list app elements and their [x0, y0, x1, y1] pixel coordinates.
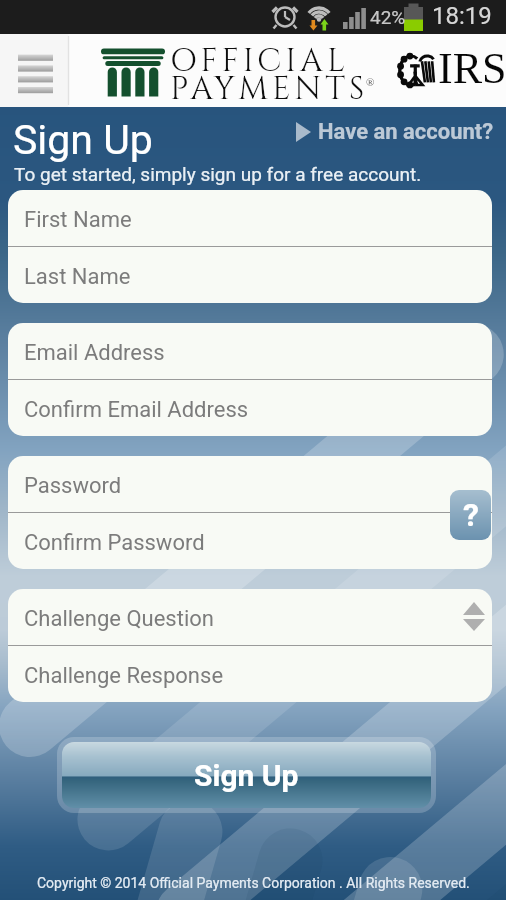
- button[interactable]: Menu: [0, 34, 70, 107]
- staticText: Challenge Response: [24, 663, 224, 689]
- button[interactable]: Help: [450, 490, 491, 540]
- staticText: Have an account?: [318, 119, 494, 145]
- staticText: Password: [24, 473, 122, 499]
- staticText: Email Address: [24, 340, 165, 366]
- staticText: Copyright © 2014 Official Payments Corpo…: [37, 875, 470, 891]
- staticText: Confirm Email Address: [24, 397, 249, 423]
- button[interactable]: Confirm Password: [8, 513, 492, 569]
- button[interactable]: Password: [8, 456, 492, 512]
- staticText: ®: [366, 76, 375, 88]
- staticText: 42%: [370, 6, 406, 28]
- button[interactable]: Last Name: [8, 247, 492, 303]
- staticText: OFFICIAL: [170, 40, 349, 83]
- staticText: Sign Up: [194, 758, 299, 793]
- staticText: Challenge Question: [24, 606, 214, 632]
- button[interactable]: Sign Up: [62, 742, 431, 808]
- staticText: To get started, simply sign up for a fre…: [14, 163, 422, 185]
- staticText: IRS: [438, 44, 506, 93]
- staticText: ?: [463, 496, 479, 534]
- staticText: Last Name: [24, 264, 131, 290]
- button[interactable]: Challenge Question: [8, 589, 492, 645]
- staticText: Confirm Password: [24, 530, 205, 556]
- staticText: 18:19: [432, 2, 492, 30]
- staticText: Sign Up: [13, 116, 153, 164]
- staticText: First Name: [24, 207, 132, 233]
- button[interactable]: Confirm Email Address: [8, 380, 492, 436]
- staticText: PAYMENTS: [170, 68, 369, 111]
- button[interactable]: First Name: [8, 190, 492, 246]
- button[interactable]: Challenge Response: [8, 646, 492, 702]
- button[interactable]: Email Address: [8, 323, 492, 379]
- button[interactable]: Have an account?: [296, 119, 494, 145]
